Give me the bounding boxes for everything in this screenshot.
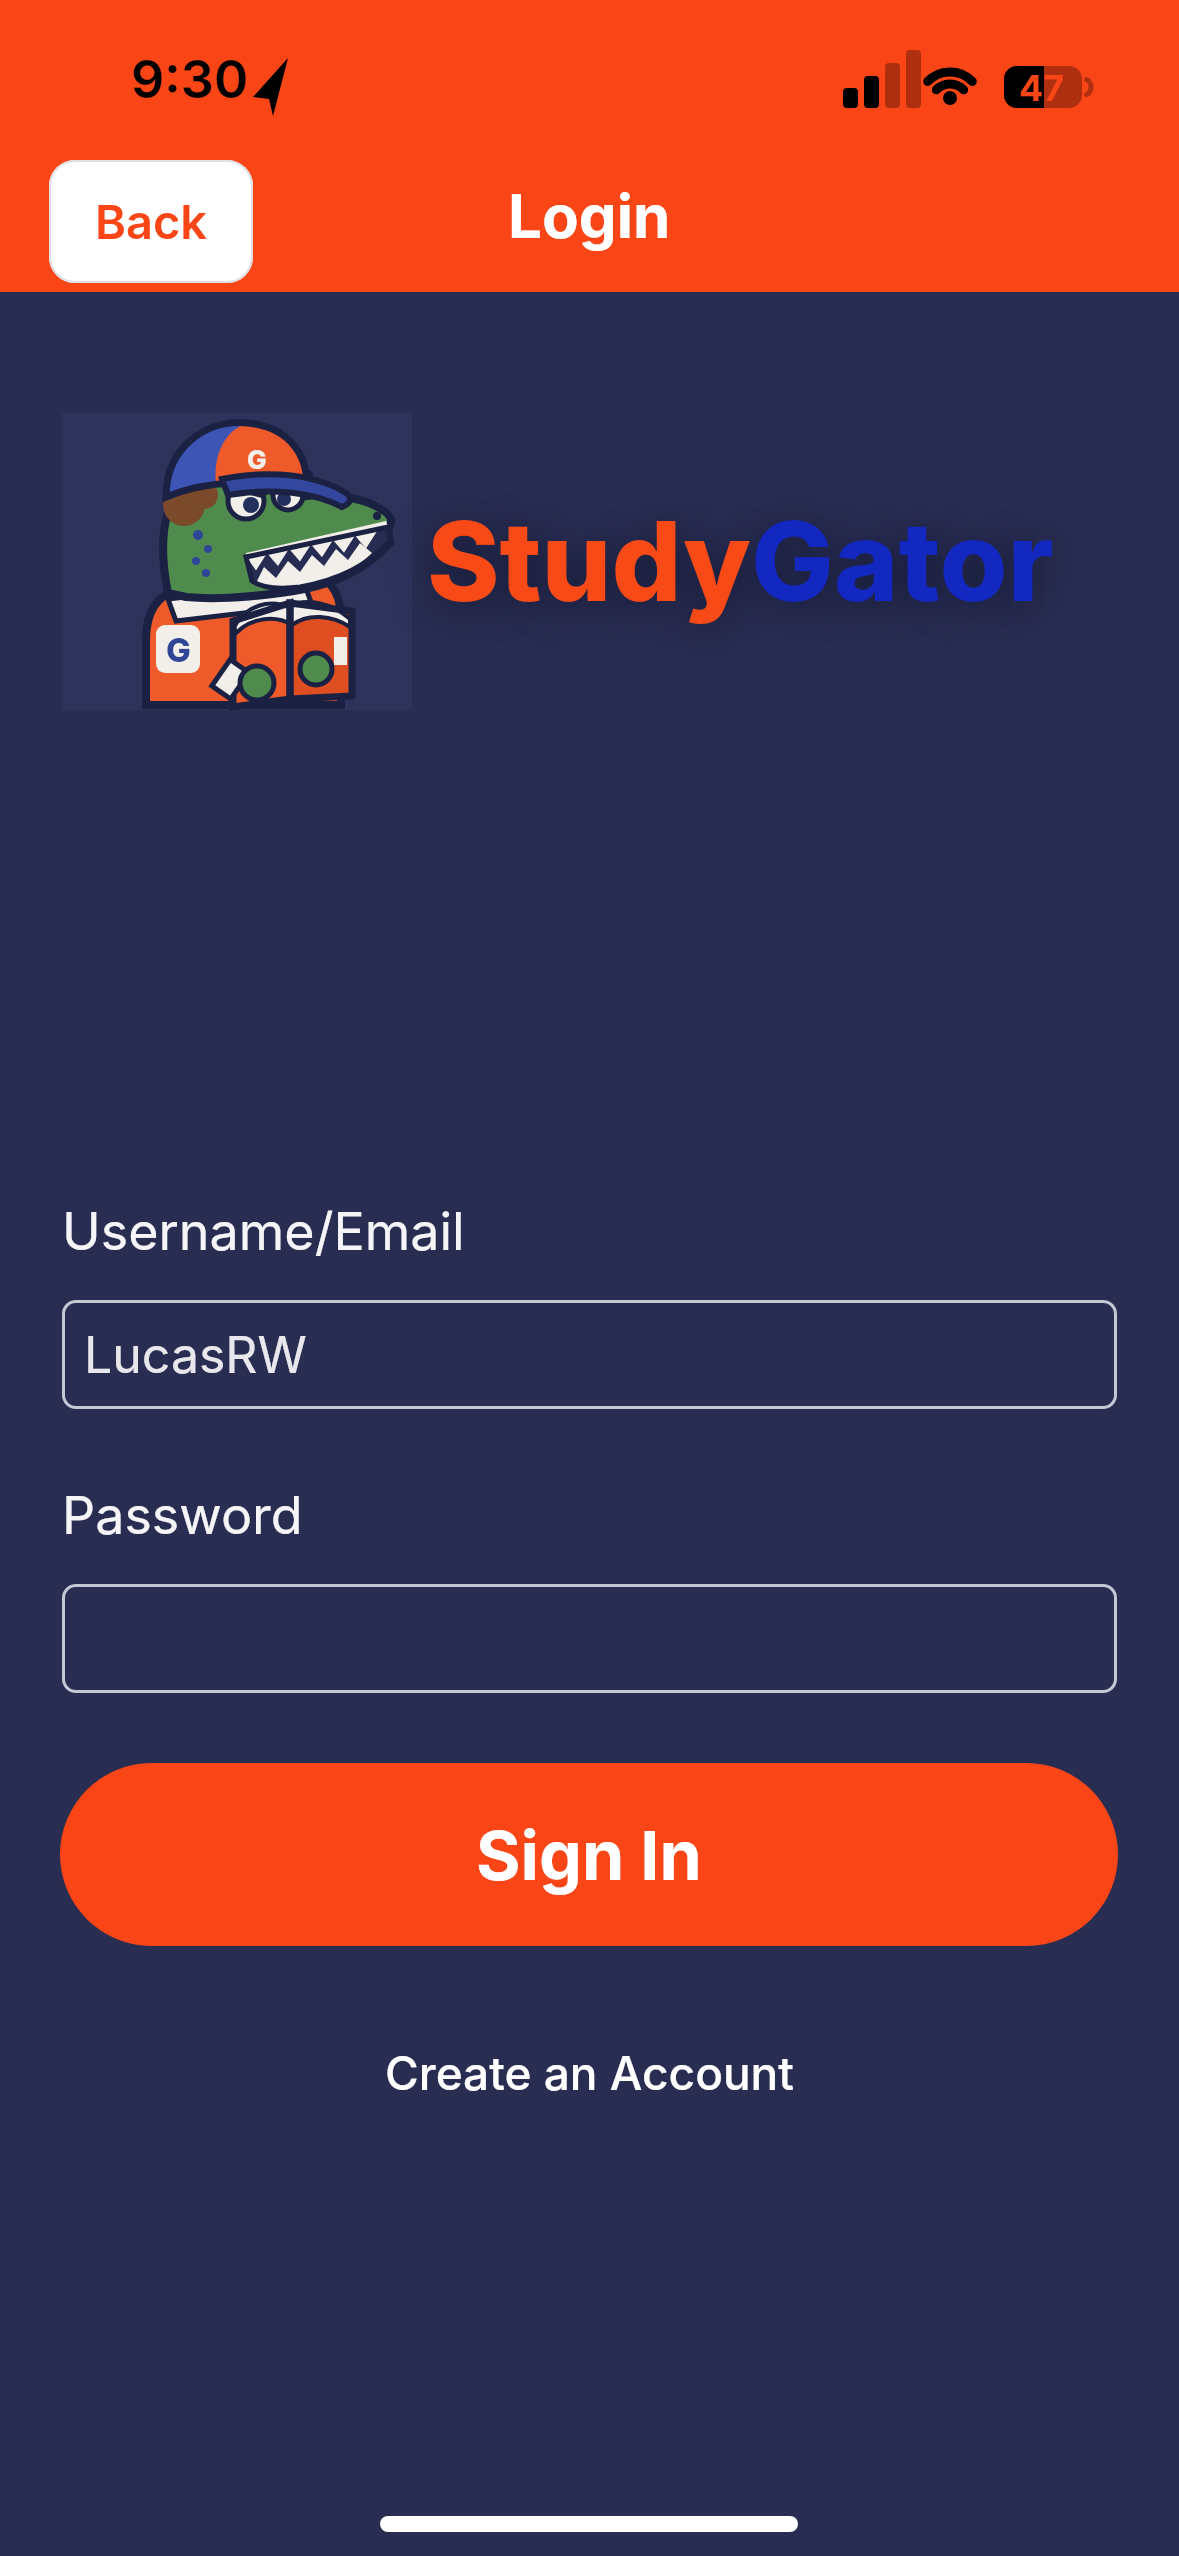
staticText: 47 [1019, 66, 1065, 110]
staticText: StudyGator [427, 494, 1054, 627]
button[interactable] [62, 1584, 1117, 1693]
staticText: Back [95, 193, 208, 250]
staticText: Sign In [476, 1814, 702, 1896]
staticText: LucasRW [84, 1325, 307, 1385]
staticText: G [247, 444, 267, 475]
button[interactable]: Create an Account [0, 2045, 1179, 2101]
staticText: Username/Email [62, 1200, 465, 1263]
button[interactable]: Back [49, 160, 253, 283]
staticText: G [166, 630, 191, 670]
button[interactable]: LucasRW [62, 1300, 1117, 1409]
staticText: Password [62, 1484, 303, 1547]
staticText: 9:30 [131, 48, 249, 111]
staticText: Create an Account [385, 2045, 794, 2101]
button[interactable]: Sign In [60, 1763, 1118, 1946]
staticText: Login [508, 180, 671, 253]
